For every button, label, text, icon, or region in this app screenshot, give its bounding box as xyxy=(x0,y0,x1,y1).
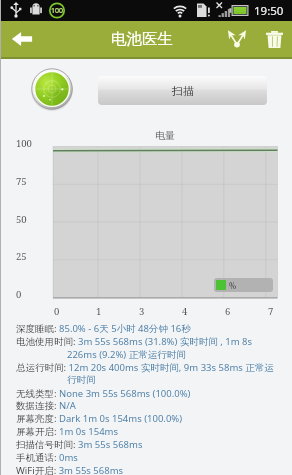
staticText: 电量 xyxy=(155,129,175,142)
staticText: 扫描 xyxy=(172,84,194,98)
staticText: 屏幕开启: 1m 0s 154ms xyxy=(16,425,118,438)
staticText: 数据连接: N/A xyxy=(16,399,76,412)
staticText: 226ms (9.2%) 正常运行时间 xyxy=(67,348,186,361)
staticText: 7 xyxy=(268,305,274,318)
staticText: 电池医生 xyxy=(111,29,173,49)
button[interactable]: Share xyxy=(218,21,256,57)
button[interactable]: Back xyxy=(0,21,44,57)
button[interactable]: Radar scan xyxy=(31,68,73,110)
staticText: 50 xyxy=(16,213,27,226)
staticText: 4 xyxy=(182,305,188,318)
staticText: 电池使用时间: 3m 55s 568ms (31.8%) 实时时间 , 1m 8… xyxy=(16,335,253,348)
staticText: 总运行时间: 12m 20s 400ms 实时时间, 9m 33s 58ms 正… xyxy=(16,361,274,374)
staticText: 屏幕亮度: Dark 1m 0s 154ms (100.0%) xyxy=(16,412,183,425)
staticText: 100 xyxy=(16,137,32,150)
staticText: 100 xyxy=(51,6,64,16)
staticText: 深度睡眠: 85.0% - 6天 5小时 48分钟 16秒 xyxy=(16,322,191,335)
staticText: % xyxy=(229,280,237,291)
staticText: WiFi开启: 3m 55s 568ms xyxy=(16,464,124,475)
staticText: 行时间 xyxy=(67,374,96,386)
staticText: 75 xyxy=(16,175,27,188)
staticText: 0 xyxy=(16,288,22,301)
staticText: 6 xyxy=(225,305,231,318)
staticText: 扫描信号时间: 3m 55s 568ms xyxy=(16,438,143,451)
staticText: 0 xyxy=(54,305,60,318)
staticText: 1 xyxy=(96,305,102,318)
staticText: 无线类型: None 3m 55s 568ms (100.0%) xyxy=(16,387,191,400)
staticText: 25 xyxy=(16,250,27,263)
staticText: 3 xyxy=(139,305,145,318)
button[interactable]: Delete xyxy=(256,21,292,57)
staticText: 手机通话: 0ms xyxy=(16,451,78,464)
button[interactable]: 扫描 xyxy=(98,76,267,105)
staticText: 19:50 xyxy=(254,3,284,19)
